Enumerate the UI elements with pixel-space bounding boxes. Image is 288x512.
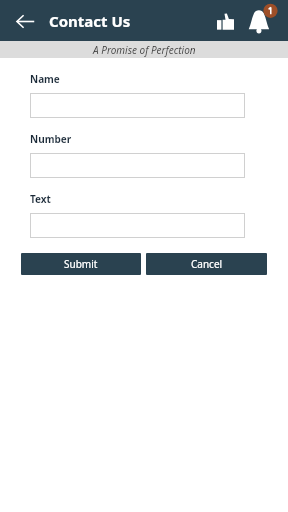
button[interactable]: Notifications [246, 4, 280, 38]
staticText: Contact Us [49, 11, 131, 31]
staticText: Cancel [191, 257, 223, 271]
button[interactable] [30, 93, 245, 118]
button[interactable] [30, 153, 245, 178]
button[interactable]: Back [10, 6, 40, 36]
staticText: Text [30, 192, 51, 206]
button[interactable] [30, 213, 245, 238]
button[interactable]: Like [210, 6, 240, 36]
staticText: Name [30, 72, 60, 86]
staticText: Number [30, 132, 72, 146]
button[interactable]: Cancel [146, 253, 267, 275]
staticText: A Promise of Perfection [93, 43, 196, 57]
button[interactable]: Submit [21, 253, 141, 275]
staticText: Submit [64, 257, 98, 271]
